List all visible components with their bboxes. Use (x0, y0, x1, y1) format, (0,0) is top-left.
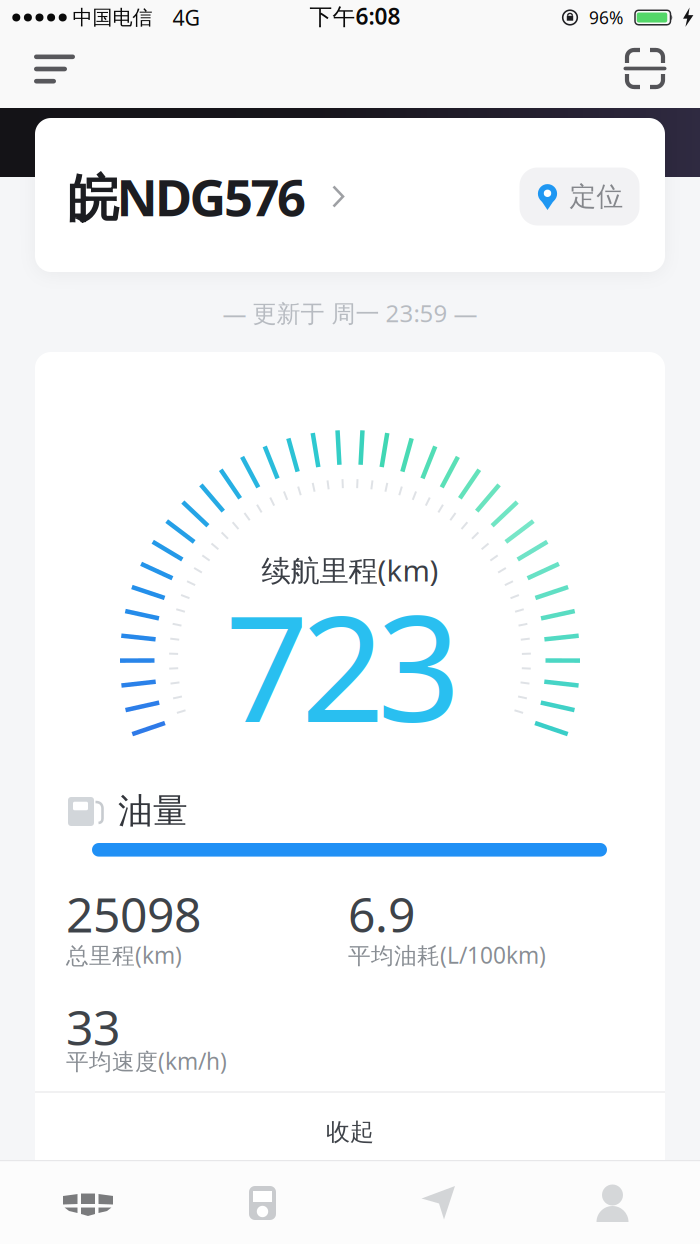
button[interactable]: 皖NDG576 (68, 151, 398, 241)
staticText: 96% (589, 6, 623, 29)
staticText: 33 (66, 995, 120, 1059)
staticText: 皖NDG576 (68, 163, 306, 230)
staticText: 油量 (118, 790, 188, 832)
staticText: 25098 (66, 882, 201, 946)
button[interactable]: Navigation (417, 1182, 457, 1222)
staticText: 平均油耗(L/100km) (348, 940, 546, 970)
staticText: 4G (172, 3, 200, 32)
button[interactable]: Profile (592, 1182, 633, 1222)
button[interactable]: Remote control (247, 1184, 278, 1222)
staticText: 定位 (569, 180, 623, 213)
staticText: 中国电信 (72, 5, 152, 30)
staticText: 续航里程(km) (261, 550, 438, 589)
staticText: 平均速度(km/h) (66, 1046, 227, 1076)
button[interactable]: 定位 (519, 167, 639, 225)
button[interactable]: 收起 (35, 1099, 665, 1165)
staticText: 下午6:08 (309, 1, 400, 31)
button[interactable]: Scan (623, 48, 667, 89)
staticText: 723 (225, 568, 461, 762)
staticText: 6.9 (348, 882, 415, 946)
button[interactable]: Menu (34, 54, 75, 83)
staticText: — 更新于 周一 23:59 — (222, 297, 477, 329)
button[interactable]: Home (60, 1189, 116, 1217)
staticText: 收起 (326, 1117, 374, 1147)
staticText: 总里程(km) (66, 940, 182, 970)
